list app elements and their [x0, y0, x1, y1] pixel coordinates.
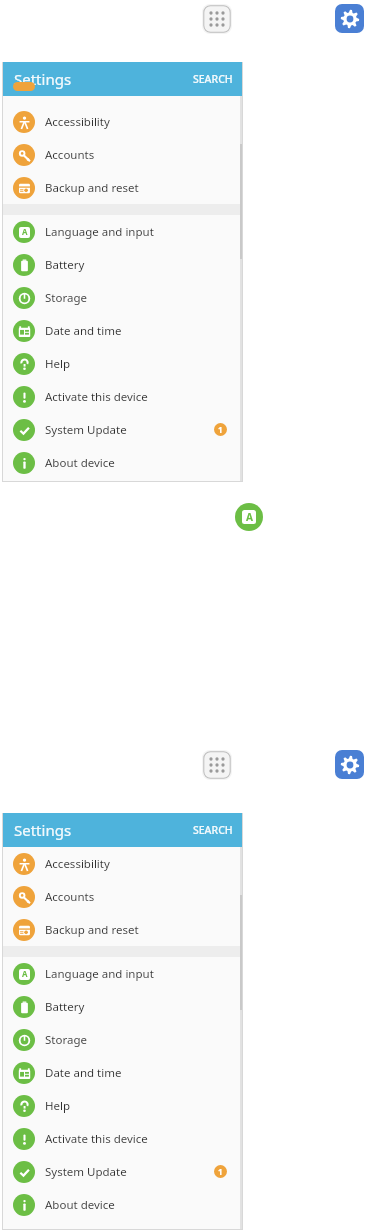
button[interactable]: A	[2, 957, 243, 990]
button[interactable]: System Update	[2, 1155, 243, 1188]
staticText: A	[22, 227, 28, 238]
button[interactable]: Help	[2, 1089, 243, 1122]
button[interactable]: Accounts	[2, 138, 243, 171]
staticText: Date and time	[45, 1065, 122, 1081]
staticText: Battery	[45, 257, 85, 273]
staticText: 1	[218, 1166, 223, 1177]
staticText: About device	[45, 1197, 115, 1213]
button[interactable]: Settings	[2, 813, 243, 847]
staticText: Backup and reset	[45, 922, 139, 938]
button[interactable]: A	[2, 215, 243, 248]
staticText: Language and input	[45, 224, 154, 240]
button[interactable]: Backup and reset	[2, 171, 243, 204]
button[interactable]: Accessibility	[2, 847, 243, 880]
staticText: Battery	[45, 999, 85, 1015]
staticText: System Update	[45, 422, 127, 438]
staticText: Settings	[14, 69, 72, 89]
button[interactable]: Settings	[2, 62, 243, 96]
staticText: Backup and reset	[45, 180, 139, 196]
staticText: Help	[45, 356, 71, 372]
button[interactable]: Apps	[202, 750, 232, 780]
button[interactable]: About device	[2, 446, 243, 479]
other: Language and input	[235, 503, 263, 531]
button[interactable]: Accounts	[2, 880, 243, 913]
button[interactable]: Accessibility	[2, 105, 243, 138]
button[interactable]: Settings	[335, 4, 364, 33]
button[interactable]: Activate this device	[2, 380, 243, 413]
button[interactable]: Apps	[202, 4, 232, 34]
button[interactable]: SEARCH	[193, 72, 243, 86]
button[interactable]: Battery	[2, 990, 243, 1023]
button[interactable]: Storage	[2, 281, 243, 314]
button[interactable]: Battery	[2, 248, 243, 281]
staticText: Date and time	[45, 323, 122, 339]
staticText: A	[246, 510, 253, 524]
button[interactable]: Backup and reset	[2, 913, 243, 946]
staticText: Storage	[45, 1032, 87, 1048]
staticText: Storage	[45, 290, 87, 306]
staticText: SEARCH	[193, 72, 233, 86]
button[interactable]: System Update	[2, 413, 243, 446]
button[interactable]: Storage	[2, 1023, 243, 1056]
button[interactable]: Activate this device	[2, 1122, 243, 1155]
staticText: Accessibility	[45, 114, 110, 130]
button[interactable]: Date and time	[2, 314, 243, 347]
staticText: A	[22, 969, 28, 980]
staticText: Accounts	[45, 889, 95, 905]
button[interactable]: Date and time	[2, 1056, 243, 1089]
button[interactable]: Settings	[335, 750, 364, 779]
staticText: Activate this device	[45, 389, 148, 405]
staticText: 1	[218, 424, 223, 435]
staticText: SEARCH	[193, 823, 233, 837]
staticText: System Update	[45, 1164, 127, 1180]
staticText: Activate this device	[45, 1131, 148, 1147]
staticText: Help	[45, 1098, 71, 1114]
staticText: Settings	[14, 820, 72, 840]
button[interactable]: About device	[2, 1188, 243, 1221]
button[interactable]: SEARCH	[193, 823, 243, 837]
staticText: Language and input	[45, 966, 154, 982]
staticText: Accounts	[45, 147, 95, 163]
button[interactable]: Help	[2, 347, 243, 380]
staticText: About device	[45, 455, 115, 471]
staticText: Accessibility	[45, 856, 110, 872]
